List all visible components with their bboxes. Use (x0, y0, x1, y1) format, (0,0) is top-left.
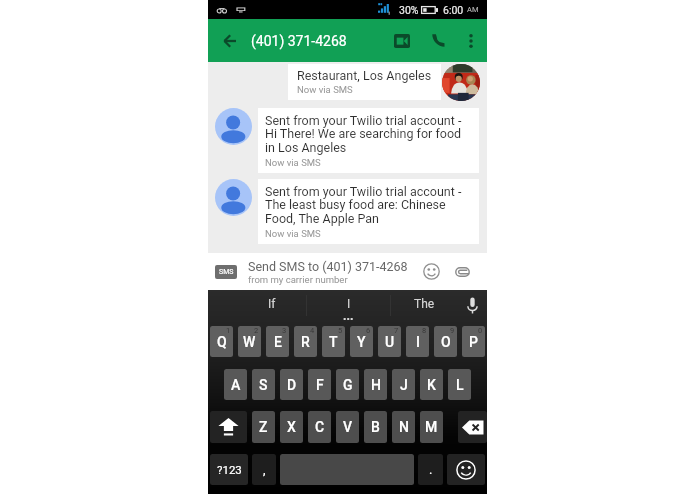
button[interactable]: Attach (448, 253, 477, 290)
staticText: K (427, 377, 436, 393)
staticText: E (274, 334, 282, 350)
staticText: . (429, 462, 433, 477)
staticText: D (287, 377, 297, 393)
staticText: AM (467, 5, 479, 14)
button[interactable]: Emoji (414, 253, 448, 290)
staticText: SMS (219, 268, 234, 276)
staticText: W (243, 334, 256, 350)
button[interactable]: A (224, 369, 247, 400)
button[interactable]: K (420, 369, 443, 400)
staticText: from my carrier number (248, 274, 348, 285)
staticText: S (259, 377, 268, 393)
button[interactable]: Backspace (458, 411, 487, 443)
staticText: U (385, 334, 395, 350)
staticText: Q (217, 334, 227, 350)
staticText: A (231, 377, 241, 393)
button[interactable]: , (252, 454, 276, 485)
button[interactable]: Q (210, 326, 233, 357)
staticText: (401) 371-4268 (251, 33, 347, 49)
button[interactable]: If (237, 290, 306, 320)
button[interactable]: N (392, 411, 415, 443)
staticText: P (469, 334, 478, 350)
staticText: H (371, 377, 381, 393)
staticText: V (343, 419, 353, 435)
button[interactable]: S (252, 369, 275, 400)
staticText: O (441, 334, 451, 350)
button[interactable]: ?123 (210, 454, 248, 485)
staticText: R (301, 334, 310, 350)
button[interactable]: . (418, 454, 443, 485)
staticText: 9 (450, 326, 455, 335)
staticText: Sent from your Twilio trial account - Th… (265, 184, 464, 226)
button[interactable]: G (336, 369, 359, 400)
button[interactable]: More options (456, 19, 486, 62)
button[interactable]: B (364, 411, 387, 443)
button[interactable]: Y (350, 326, 373, 357)
button[interactable]: M (420, 411, 443, 443)
button[interactable]: Shift (210, 411, 247, 443)
staticText: Now via SMS (265, 228, 321, 239)
button[interactable]: H (364, 369, 387, 400)
button[interactable]: I (406, 326, 429, 357)
staticText: I (347, 297, 351, 311)
staticText: 1 (226, 326, 231, 335)
button[interactable]: W (238, 326, 261, 357)
staticText: Z (259, 419, 268, 435)
staticText: 7 (394, 326, 399, 335)
staticText: 2 (254, 326, 259, 335)
staticText: M (425, 419, 438, 435)
button[interactable]: X (280, 411, 303, 443)
button[interactable]: F (308, 369, 331, 400)
button[interactable]: V (336, 411, 359, 443)
staticText: 5 (338, 326, 343, 335)
staticText: C (315, 419, 325, 435)
staticText: 8 (422, 326, 427, 335)
button[interactable]: D (280, 369, 303, 400)
staticText: X (287, 419, 296, 435)
staticText: J (400, 377, 408, 393)
button[interactable]: U (378, 326, 401, 357)
button[interactable]: T (322, 326, 345, 357)
staticText: T (329, 334, 338, 350)
button[interactable]: Emoji keyboard (447, 454, 485, 485)
button[interactable]: E (266, 326, 289, 357)
button[interactable]: R (294, 326, 317, 357)
button[interactable]: P (462, 326, 485, 357)
button[interactable]: The (391, 290, 457, 320)
staticText: F (316, 377, 324, 393)
staticText: Restaurant, Los Angeles (297, 68, 432, 83)
button[interactable]: O (434, 326, 457, 357)
button[interactable]: Call (420, 19, 456, 62)
staticText: 6:00 (443, 4, 464, 16)
staticText: Now via SMS (297, 84, 353, 95)
staticText: Send SMS to (401) 371-4268 (248, 259, 408, 274)
staticText: ?123 (217, 463, 242, 476)
staticText: ... (343, 309, 354, 323)
button[interactable]: Voice input (457, 290, 487, 320)
staticText: 6 (366, 326, 371, 335)
staticText: G (343, 377, 353, 393)
button[interactable]: Video call (384, 19, 420, 62)
button[interactable]: Back (208, 19, 251, 62)
staticText: The (414, 297, 435, 311)
staticText: 0 (478, 326, 483, 335)
staticText: B (371, 419, 380, 435)
staticText: L (456, 377, 464, 393)
staticText: 30% (399, 4, 419, 16)
button[interactable]: Z (252, 411, 275, 443)
staticText: 3 (282, 326, 287, 335)
staticText: I (416, 334, 420, 350)
button[interactable]: I (307, 290, 390, 320)
staticText: N (399, 419, 409, 435)
staticText: If (268, 297, 276, 311)
staticText: Sent from your Twilio trial account - Hi… (265, 113, 464, 155)
staticText: Now via SMS (265, 157, 321, 168)
button[interactable]: C (308, 411, 331, 443)
button[interactable]: L (448, 369, 471, 400)
staticText: , (263, 462, 266, 477)
staticText: Y (357, 334, 366, 350)
button[interactable]: J (392, 369, 415, 400)
staticText: 4 (310, 326, 315, 335)
